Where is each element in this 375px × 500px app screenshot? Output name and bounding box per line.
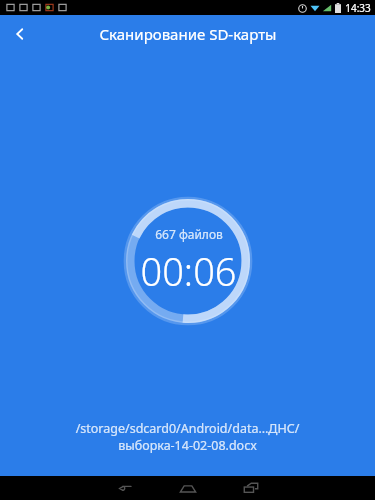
button[interactable]: Home: [169, 476, 207, 500]
button[interactable]: Recent apps: [232, 476, 270, 500]
staticText: 667 файлов: [155, 226, 223, 242]
staticText: /storage/sdcard0/Android/data…ДНС/выборк…: [12, 420, 363, 454]
button[interactable]: Back: [106, 476, 144, 500]
staticText: 14:33: [345, 1, 371, 15]
button[interactable]: Back: [0, 15, 40, 53]
staticText: 00:06: [140, 245, 237, 297]
staticText: Сканирование SD-карты: [99, 24, 277, 44]
